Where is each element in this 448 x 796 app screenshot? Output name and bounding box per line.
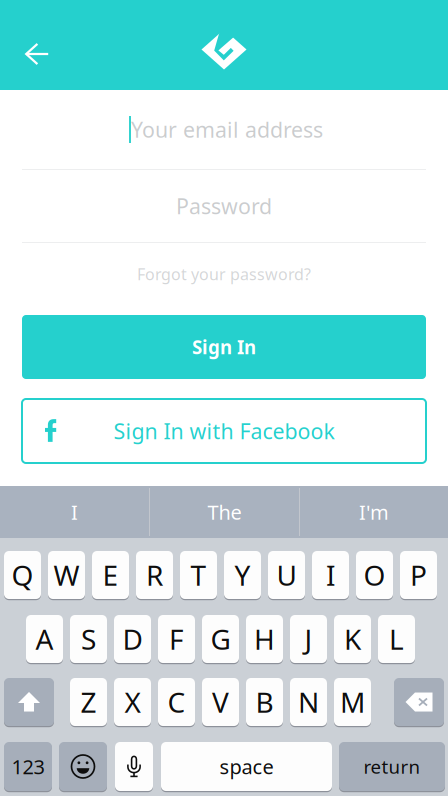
button[interactable]: I xyxy=(0,486,149,538)
button[interactable]: V xyxy=(202,677,239,727)
staticText: I'm xyxy=(359,499,389,525)
staticText: N xyxy=(298,683,319,721)
staticText: P xyxy=(410,556,427,594)
staticText: F xyxy=(169,620,184,658)
button[interactable]: I xyxy=(312,550,349,600)
staticText: V xyxy=(212,683,229,721)
button[interactable] xyxy=(4,677,54,727)
button[interactable]: R xyxy=(136,550,173,600)
button[interactable]: W xyxy=(48,550,85,600)
staticText: I xyxy=(326,556,335,594)
staticText: X xyxy=(124,683,140,721)
button[interactable]: space xyxy=(161,741,332,792)
staticText: S xyxy=(81,620,96,658)
button[interactable]: A xyxy=(26,614,63,664)
staticText: 123 xyxy=(11,753,44,780)
staticText: T xyxy=(190,556,206,594)
staticText: K xyxy=(344,620,361,658)
staticText: J xyxy=(304,620,312,658)
staticText: Z xyxy=(80,683,96,721)
button[interactable]: Forgot your password? xyxy=(0,243,448,305)
button[interactable]: X xyxy=(114,677,151,727)
staticText: Forgot your password? xyxy=(137,263,311,285)
button[interactable]: E xyxy=(92,550,129,600)
staticText: return xyxy=(363,754,420,779)
button[interactable]: The xyxy=(150,486,299,538)
button[interactable] xyxy=(59,741,107,792)
button[interactable]: Z xyxy=(70,677,107,727)
button[interactable]: G xyxy=(202,614,239,664)
staticText: O xyxy=(363,556,385,594)
button[interactable]: K xyxy=(334,614,371,664)
button[interactable]: return xyxy=(339,741,445,792)
staticText: Sign In with Facebook xyxy=(113,417,334,445)
button[interactable]: S xyxy=(70,614,107,664)
button[interactable] xyxy=(115,741,153,792)
staticText: Sign In xyxy=(192,335,256,359)
button[interactable]: Your email address xyxy=(0,90,448,169)
staticText: Y xyxy=(234,556,250,594)
button[interactable]: F xyxy=(158,614,195,664)
button[interactable]: C xyxy=(158,677,195,727)
button[interactable]: N xyxy=(290,677,327,727)
button[interactable]: D xyxy=(114,614,151,664)
staticText: M xyxy=(340,683,365,721)
button[interactable]: Sign In with Facebook xyxy=(22,399,426,463)
button[interactable]: Back xyxy=(9,30,65,78)
button[interactable]: I'm xyxy=(300,486,448,538)
staticText: A xyxy=(35,620,53,658)
staticText: E xyxy=(102,556,118,594)
staticText: space xyxy=(219,753,273,780)
staticText: Password xyxy=(176,192,272,220)
staticText: D xyxy=(122,620,142,658)
staticText: U xyxy=(276,556,296,594)
button[interactable]: Sign In xyxy=(22,315,426,379)
button[interactable]: Y xyxy=(224,550,261,600)
button[interactable]: J xyxy=(290,614,327,664)
button[interactable]: O xyxy=(356,550,393,600)
button[interactable]: H xyxy=(246,614,283,664)
button[interactable]: 123 xyxy=(4,741,52,792)
staticText: Your email address xyxy=(131,115,323,144)
staticText: G xyxy=(210,620,230,658)
button[interactable] xyxy=(394,677,444,727)
button[interactable]: Q xyxy=(4,550,41,600)
staticText: R xyxy=(146,556,163,594)
staticText: B xyxy=(255,683,273,721)
button[interactable]: B xyxy=(246,677,283,727)
staticText: The xyxy=(207,499,241,525)
button[interactable]: L xyxy=(378,614,415,664)
button[interactable]: Password xyxy=(0,170,448,242)
staticText: I xyxy=(71,499,78,525)
staticText: Q xyxy=(11,556,33,594)
button[interactable]: U xyxy=(268,550,305,600)
button[interactable]: P xyxy=(400,550,437,600)
staticText: L xyxy=(389,620,404,658)
button[interactable]: T xyxy=(180,550,217,600)
staticText: W xyxy=(53,556,79,594)
staticText: H xyxy=(254,620,275,658)
button[interactable]: M xyxy=(334,677,371,727)
staticText: C xyxy=(167,683,185,721)
